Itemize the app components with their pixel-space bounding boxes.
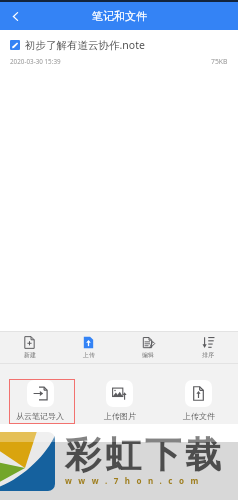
button[interactable]: Back — [0, 2, 30, 30]
staticText: 编辑 — [142, 351, 154, 359]
staticText: w w w . 7 h o n . c o m — [65, 475, 201, 486]
staticText: 75KB — [211, 57, 228, 66]
staticText: 笔记和文件 — [92, 9, 147, 23]
staticText: 上传文件 — [183, 411, 215, 421]
button[interactable]: 编辑 — [118, 332, 178, 363]
staticText: 从云笔记导入 — [16, 411, 64, 421]
button[interactable]: 上传文件 — [159, 364, 238, 424]
button[interactable]: 上传图片 — [80, 364, 159, 424]
staticText: 上传 — [83, 351, 95, 359]
staticText: 彩虹下载 — [63, 432, 223, 477]
staticText: 初步了解有道云协作.note — [25, 38, 145, 52]
button[interactable]: 新建 — [0, 332, 59, 363]
staticText: 排序 — [202, 351, 214, 359]
button[interactable]: 从云笔记导入 — [0, 364, 80, 424]
button[interactable]: 上传 — [59, 332, 118, 363]
staticText: 新建 — [24, 351, 36, 359]
staticText: 上传图片 — [104, 411, 136, 421]
staticText: 2020-03-30 15:39 — [10, 57, 61, 66]
button[interactable]: 初步了解有道云协作.note — [0, 30, 238, 66]
button[interactable]: 排序 — [178, 332, 238, 363]
